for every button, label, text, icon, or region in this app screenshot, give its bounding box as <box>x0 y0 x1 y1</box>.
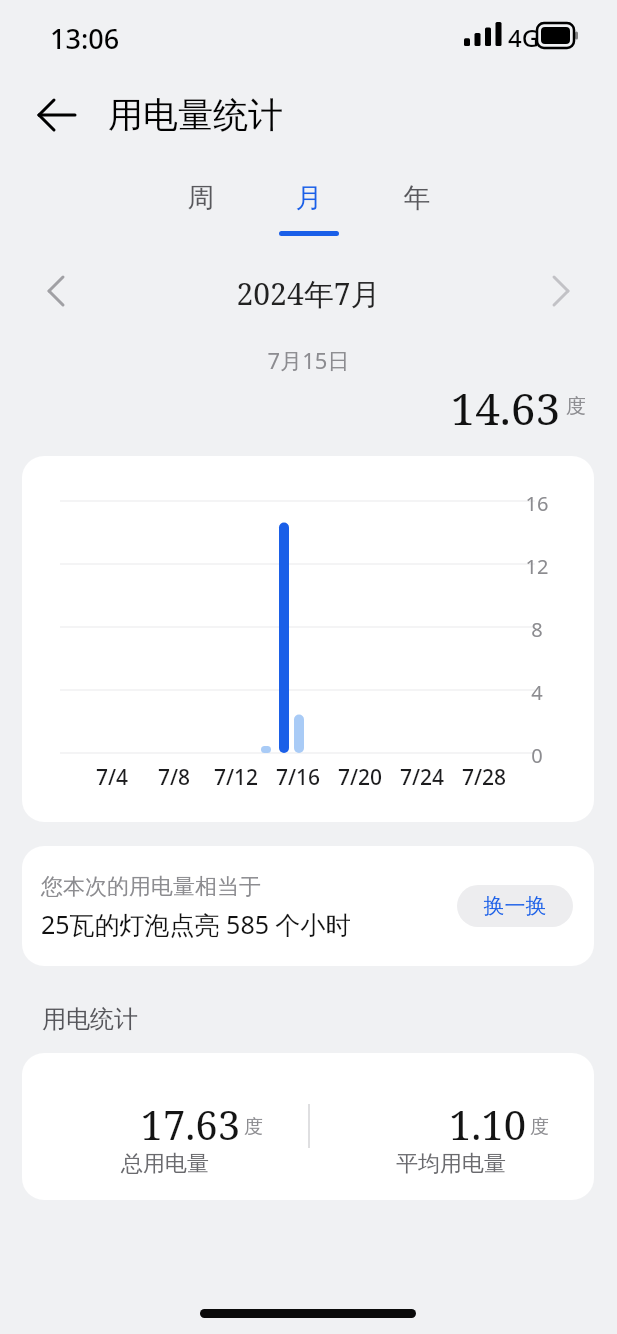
staticText: 2024年7月 <box>84 273 533 309</box>
staticText: 换一换 <box>457 893 573 927</box>
staticText: 您本次的用电量相当于 <box>41 873 261 901</box>
staticText: 度 <box>244 1115 263 1139</box>
staticText: 7/4 <box>78 763 146 789</box>
button[interactable]: 下一月 <box>533 261 595 321</box>
button[interactable]: 2024年7月 <box>84 273 533 309</box>
staticText: 1.10 <box>308 1097 526 1141</box>
staticText: 4G <box>508 21 540 54</box>
staticText: 7/12 <box>202 763 270 789</box>
staticText: 14.63 <box>0 378 560 426</box>
button[interactable]: 上一月 <box>22 261 84 321</box>
staticText: 7/28 <box>450 763 518 789</box>
button[interactable]: 换一换 <box>457 885 573 927</box>
staticText: 4 <box>515 679 559 703</box>
staticText: 16 <box>515 490 559 514</box>
staticText: 年 <box>386 181 448 227</box>
staticText: 0 <box>515 742 559 766</box>
staticText: 7/16 <box>264 763 332 789</box>
staticText: 周 <box>170 181 232 227</box>
staticText: 25瓦的灯泡点亮 585 个小时 <box>41 907 351 941</box>
button[interactable]: 17.63 <box>22 1053 308 1200</box>
staticText: 7月15日 <box>0 345 617 373</box>
staticText: 用电量统计 <box>108 93 283 137</box>
staticText: 17.63 <box>22 1097 240 1141</box>
staticText: 8 <box>515 616 559 640</box>
staticText: 月 <box>278 181 340 227</box>
button[interactable]: 1.10 <box>308 1053 594 1200</box>
button[interactable]: 月 <box>278 181 340 227</box>
staticText: 用电统计 <box>42 1004 138 1034</box>
staticText: 7/8 <box>140 763 208 789</box>
staticText: 7/24 <box>388 763 456 789</box>
staticText: 总用电量 <box>22 1150 308 1178</box>
staticText: 12 <box>515 553 559 577</box>
button[interactable]: 年 <box>386 181 448 227</box>
staticText: 7/20 <box>326 763 394 789</box>
staticText: 13:06 <box>50 20 120 57</box>
button[interactable]: 返回 <box>26 84 88 146</box>
staticText: 度 <box>530 1115 549 1139</box>
staticText: 度 <box>566 394 586 419</box>
staticText: 平均用电量 <box>308 1150 594 1178</box>
button[interactable]: 周 <box>170 181 232 227</box>
